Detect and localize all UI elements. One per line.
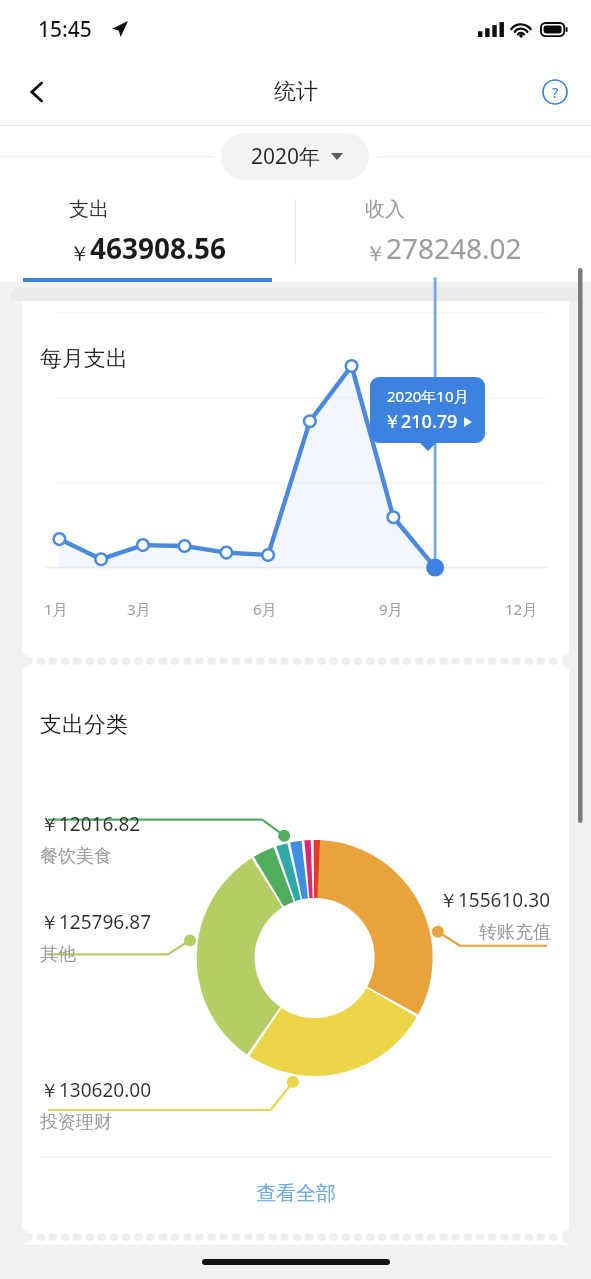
staticText: 15:45 (38, 15, 92, 44)
staticText: ￥155610.30 (439, 887, 551, 913)
staticText: 12月 (505, 599, 538, 619)
button[interactable]: 收入 (296, 186, 591, 278)
staticText: 收入 (365, 197, 405, 222)
staticText: ￥12016.82 (40, 811, 141, 837)
staticText: 餐饮美食 (40, 845, 112, 868)
staticText: ￥125796.87 (40, 909, 152, 935)
staticText: 2020年10月 (387, 386, 469, 406)
staticText: 9月 (379, 599, 403, 619)
staticText: 6月 (253, 599, 277, 619)
staticText: 其他 (40, 943, 76, 966)
staticText: 查看全部 (256, 1181, 336, 1206)
staticText: 463908.56 (90, 229, 226, 267)
staticText: 投资理财 (40, 1111, 112, 1134)
staticText: 支出 (69, 197, 109, 222)
staticText: ￥210.79 (383, 409, 458, 434)
button[interactable]: 2020年 (221, 133, 369, 180)
staticText: 支出分类 (40, 711, 128, 739)
button[interactable]: Help (533, 70, 577, 114)
staticText: 2020年 (251, 142, 321, 171)
button[interactable]: 2020年10月 (370, 377, 485, 443)
staticText: 每月支出 (40, 345, 128, 373)
staticText: 3月 (127, 599, 151, 619)
staticText: 278248.02 (386, 229, 522, 267)
staticText: 统计 (274, 78, 318, 106)
button[interactable]: 查看全部 (22, 1157, 569, 1229)
staticText: ? (552, 82, 559, 102)
staticText: ￥130620.00 (40, 1077, 152, 1103)
button[interactable]: 支出 (0, 186, 295, 278)
staticText: 转账充值 (479, 921, 551, 944)
staticText: ￥ (365, 241, 386, 267)
staticText: ￥ (69, 241, 90, 267)
button[interactable]: Back (12, 66, 64, 118)
staticText: 1月 (44, 599, 68, 619)
